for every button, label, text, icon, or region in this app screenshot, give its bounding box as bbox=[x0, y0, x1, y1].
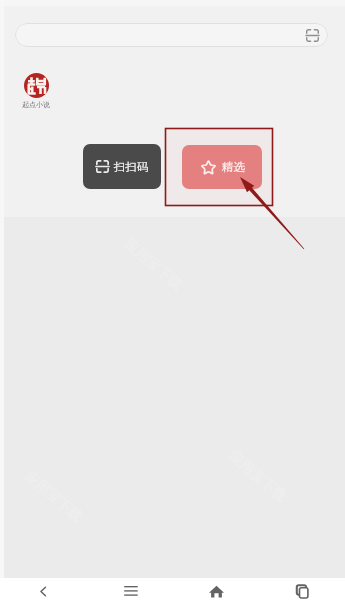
button[interactable]: Home bbox=[173, 578, 259, 600]
button[interactable]: Menu bbox=[87, 578, 173, 600]
button[interactable]: Scan code bbox=[15, 23, 328, 47]
other: Scan code bbox=[306, 29, 319, 42]
button[interactable]: 起点小说 bbox=[12, 73, 60, 109]
staticText: 起点小说 bbox=[22, 100, 50, 109]
button[interactable]: Recent apps bbox=[259, 578, 345, 600]
button[interactable]: Back bbox=[0, 578, 87, 600]
button[interactable]: 扫扫码 bbox=[83, 144, 161, 189]
staticText: 扫扫码 bbox=[114, 160, 149, 174]
staticText: 精选 bbox=[222, 160, 245, 174]
button[interactable]: 精选 bbox=[182, 145, 262, 189]
